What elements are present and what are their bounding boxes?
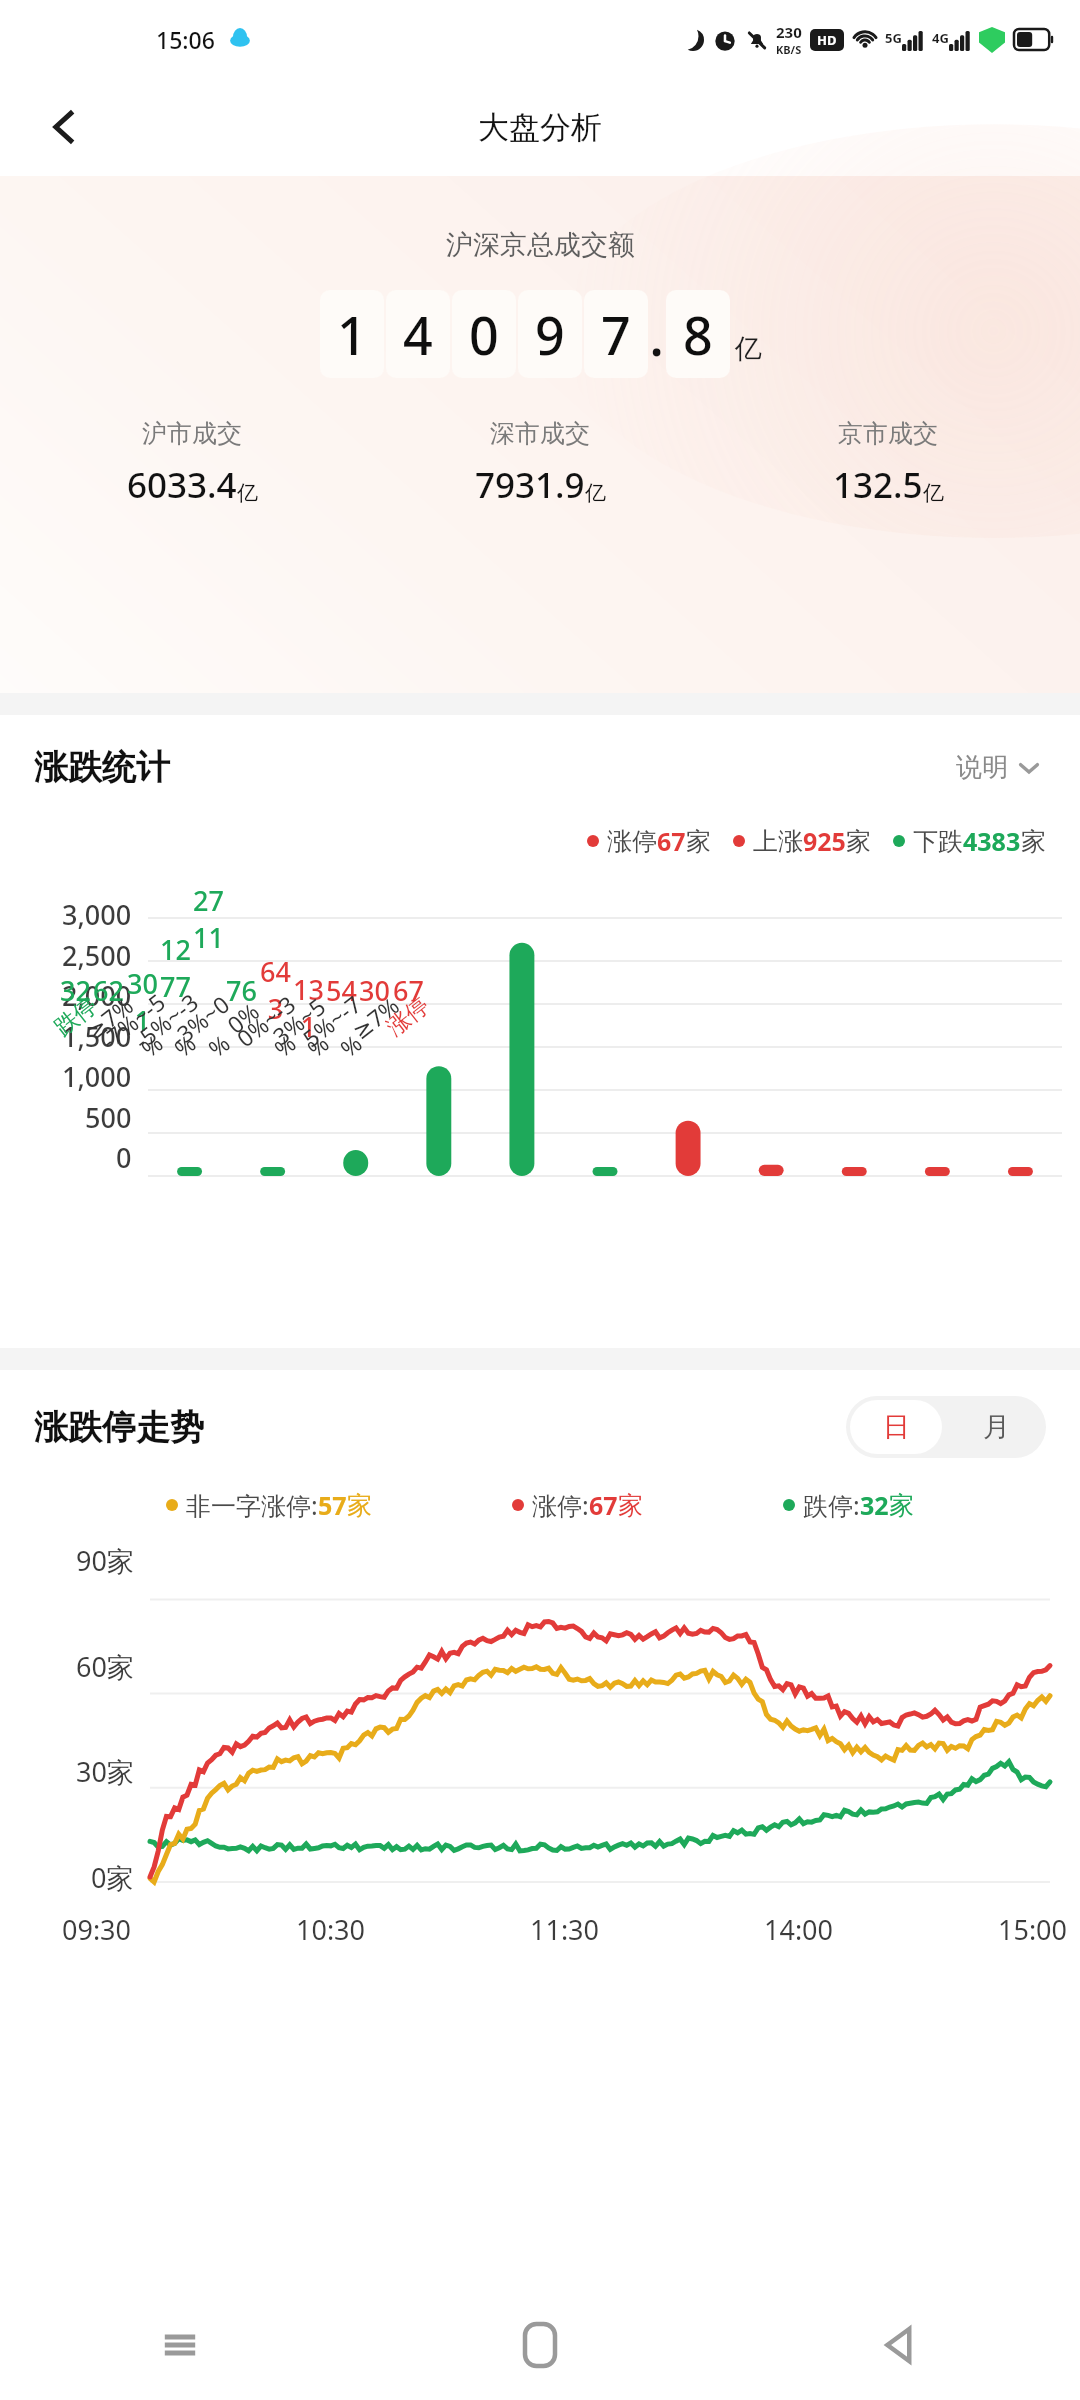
staticText: 1277 xyxy=(159,931,192,1005)
staticText: 亿 xyxy=(923,480,944,506)
staticText: 62 xyxy=(93,972,124,1009)
staticText: 131 xyxy=(292,971,325,1045)
staticText: 60家 xyxy=(76,1648,134,1685)
staticText: ≥7% xyxy=(79,989,139,1046)
button[interactable]: Recents xyxy=(0,2290,360,2400)
staticText: 7931.9 xyxy=(475,461,585,509)
staticText: 日 xyxy=(883,1410,910,1444)
staticText: ≥7% xyxy=(345,989,405,1046)
staticText: 上涨 xyxy=(753,826,803,857)
staticText: 32 xyxy=(860,1488,889,1522)
staticText: 10:30 xyxy=(296,1911,366,1948)
staticText: 下跌 xyxy=(913,826,963,857)
staticText: 9 xyxy=(535,299,565,370)
staticText: 涨停: xyxy=(532,1488,589,1522)
staticText: 沪市成交 xyxy=(142,418,242,449)
staticText: 0% xyxy=(220,995,265,1040)
staticText: 500 xyxy=(85,1099,132,1136)
staticText: 涨跌停走势 xyxy=(34,1406,204,1449)
button[interactable]: 日 xyxy=(850,1400,942,1454)
staticText: 1,000 xyxy=(62,1058,132,1095)
staticText: 6033.4 xyxy=(127,461,237,509)
staticText: 涨跌统计 xyxy=(34,746,170,789)
staticText: 京市成交 xyxy=(838,418,938,449)
staticText: 大盘分析 xyxy=(478,108,602,147)
staticText: KB/S xyxy=(776,42,802,57)
staticText: 家 xyxy=(618,1490,643,1521)
staticText: 跌停 xyxy=(49,991,103,1042)
staticText: 4 xyxy=(403,299,433,370)
staticText: 家 xyxy=(686,826,711,857)
staticText: 67 xyxy=(589,1488,618,1522)
staticText: 5%~-7% xyxy=(292,985,390,1081)
staticText: 1,500 xyxy=(62,1018,132,1055)
staticText: 跌停: xyxy=(803,1488,860,1522)
staticText: HD xyxy=(817,31,837,49)
staticText: 67 xyxy=(393,972,424,1009)
staticText: 76 xyxy=(226,972,257,1009)
staticText: 说明 xyxy=(956,751,1008,784)
staticText: 32 xyxy=(60,972,91,1009)
staticText: 30 xyxy=(359,972,390,1009)
staticText: 家 xyxy=(347,1490,372,1521)
staticText: 家 xyxy=(889,1490,914,1521)
staticText: 09:30 xyxy=(62,1911,132,1948)
button[interactable]: 月 xyxy=(946,1396,1046,1458)
staticText: 7 xyxy=(601,299,631,370)
staticText: 30家 xyxy=(76,1753,134,1790)
staticText: -5%~-3% xyxy=(126,985,224,1081)
staticText: 67 xyxy=(657,824,686,858)
staticText: 涨停 xyxy=(607,826,657,857)
staticText: 1 xyxy=(337,299,367,370)
staticText: 涨停 xyxy=(381,991,435,1042)
staticText: 非一字涨停: xyxy=(186,1488,318,1522)
staticText: 2,500 xyxy=(62,937,132,974)
staticText: 132.5 xyxy=(833,461,923,509)
staticText: -7%~-5% xyxy=(93,985,191,1081)
staticText: 月 xyxy=(983,1410,1010,1444)
staticText: 3,000 xyxy=(62,896,132,933)
staticText: 0 xyxy=(116,1139,132,1176)
staticText: 14:00 xyxy=(764,1911,834,1948)
staticText: 0家 xyxy=(91,1859,134,1896)
staticText: 5G xyxy=(885,29,902,47)
button[interactable]: Home xyxy=(360,2290,720,2400)
staticText: 3%~5% xyxy=(259,985,357,1081)
staticText: 4G xyxy=(932,29,949,47)
staticText: 4383 xyxy=(963,824,1021,858)
button[interactable]: 说明 xyxy=(950,745,1046,790)
button[interactable]: Back xyxy=(28,91,100,163)
staticText: 301 xyxy=(126,965,159,1039)
staticText: 2711 xyxy=(192,882,225,956)
staticText: 11:30 xyxy=(530,1911,600,1948)
staticText: 54 xyxy=(326,972,357,1009)
staticText: 8 xyxy=(683,299,713,370)
staticText: 亿 xyxy=(735,332,762,366)
staticText: 643 xyxy=(259,953,292,1027)
staticText: 亿 xyxy=(237,480,258,506)
staticText: 家 xyxy=(846,826,871,857)
staticText: 亿 xyxy=(585,480,606,506)
staticText: . xyxy=(649,296,665,372)
staticText: 2,000 xyxy=(62,977,132,1014)
staticText: 90家 xyxy=(76,1542,134,1579)
staticText: 15:00 xyxy=(998,1911,1068,1948)
button[interactable]: Back xyxy=(720,2290,1080,2400)
staticText: 家 xyxy=(1021,826,1046,857)
staticText: -3%~0% xyxy=(160,985,258,1081)
staticText: 230 xyxy=(776,22,802,42)
staticText: 0 xyxy=(469,299,499,370)
staticText: 深市成交 xyxy=(490,418,590,449)
staticText: 57 xyxy=(318,1488,347,1522)
staticText: 0%~-3% xyxy=(226,985,324,1081)
staticText: 15:06 xyxy=(156,24,215,55)
staticText: 沪深京总成交额 xyxy=(446,228,635,262)
staticText: 925 xyxy=(803,824,846,858)
